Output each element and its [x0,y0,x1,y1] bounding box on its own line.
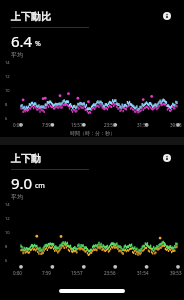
staticText: 12 [5,216,10,221]
staticText: 時間（時：分：秒） [70,130,115,136]
staticText: 7:59 [42,122,51,128]
staticText: 23:56 [104,122,116,128]
staticText: 10 [5,88,10,93]
staticText: 6 [5,116,8,121]
staticText: 15:57 [71,270,83,276]
staticText: 31:54 [137,122,149,128]
staticText: 6.4 [11,31,33,51]
staticText: 平均 [11,193,23,201]
staticText: 上下動比 [11,10,51,23]
staticText: 31:54 [137,270,149,276]
staticText: 9.0 [11,173,33,193]
button[interactable]: Information about 上下動 [159,150,175,166]
staticText: 14 [5,202,10,207]
staticText: 39:53 [170,122,182,128]
staticText: 10 [5,230,10,235]
staticText: 8 [5,102,8,107]
staticText: 12 [5,74,10,79]
staticText: 6 [5,258,8,263]
staticText: 0:00 [13,122,22,128]
staticText: cm [35,181,45,191]
staticText: 上下動 [11,152,41,165]
button[interactable]: Information about 上下動比 [159,8,175,24]
staticText: 8 [5,244,8,249]
staticText: 39:53 [170,270,182,276]
staticText: 23:56 [104,270,116,276]
staticText: 0:00 [13,270,22,276]
staticText: 14 [5,60,10,65]
staticText: 7:59 [42,270,51,276]
staticText: % [35,39,41,49]
staticText: 15:57 [71,122,83,128]
staticText: 平均 [11,51,23,59]
